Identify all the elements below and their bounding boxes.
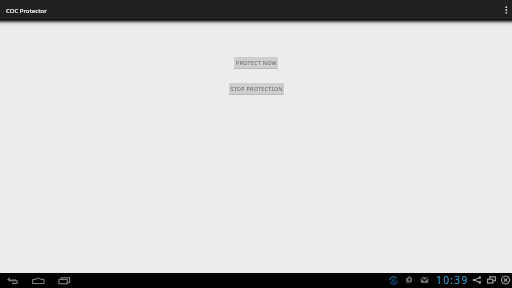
button[interactable]: Share [472, 276, 482, 284]
button[interactable]: Recent apps [58, 276, 71, 285]
button[interactable]: Close [500, 275, 511, 285]
button[interactable]: Home [31, 276, 46, 285]
button[interactable]: Screenshot [486, 276, 497, 284]
button[interactable]: PROTECT NOW [234, 57, 278, 69]
staticText: STOP PROTECTION [230, 85, 283, 92]
button[interactable]: More options [498, 0, 512, 19]
button[interactable]: Back [6, 276, 19, 285]
button[interactable]: STOP PROTECTION [229, 83, 284, 95]
staticText: 10:39 [436, 273, 469, 287]
staticText: PROTECT NOW [236, 59, 277, 66]
staticText: COC Protector [6, 7, 47, 15]
